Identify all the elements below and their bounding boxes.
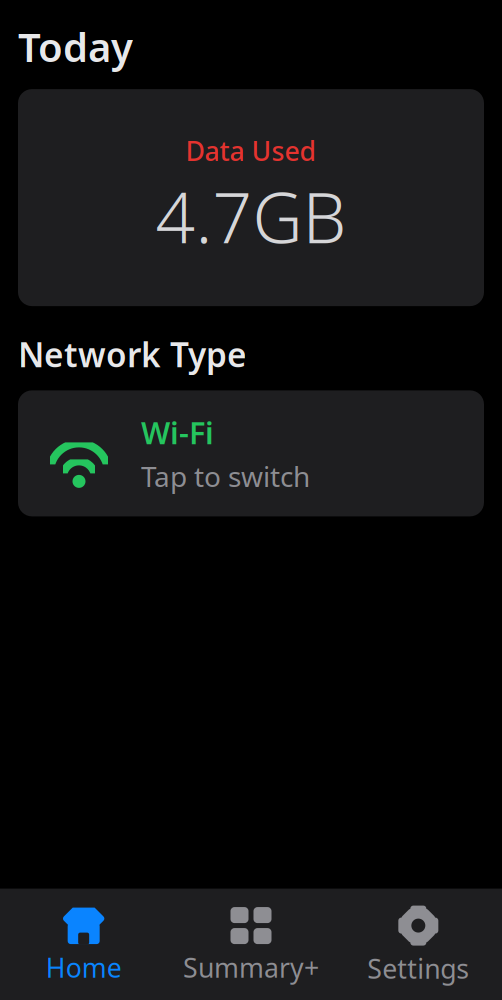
button[interactable]: Wi-Fi — [0, 390, 502, 516]
staticText: Settings — [367, 951, 469, 986]
staticText: Summary+ — [183, 950, 319, 985]
button[interactable]: Summary+ — [167, 890, 335, 999]
button[interactable]: Settings — [335, 889, 502, 1000]
button[interactable]: Home — [0, 890, 167, 999]
staticText: Home — [46, 950, 122, 985]
staticText: Today — [18, 20, 133, 73]
staticText: Data Used — [185, 133, 316, 168]
staticText: 4.7GB — [155, 170, 346, 262]
staticText: Wi-Fi — [141, 412, 214, 453]
staticText: Tap to switch — [141, 458, 310, 495]
staticText: Network Type — [18, 332, 247, 376]
